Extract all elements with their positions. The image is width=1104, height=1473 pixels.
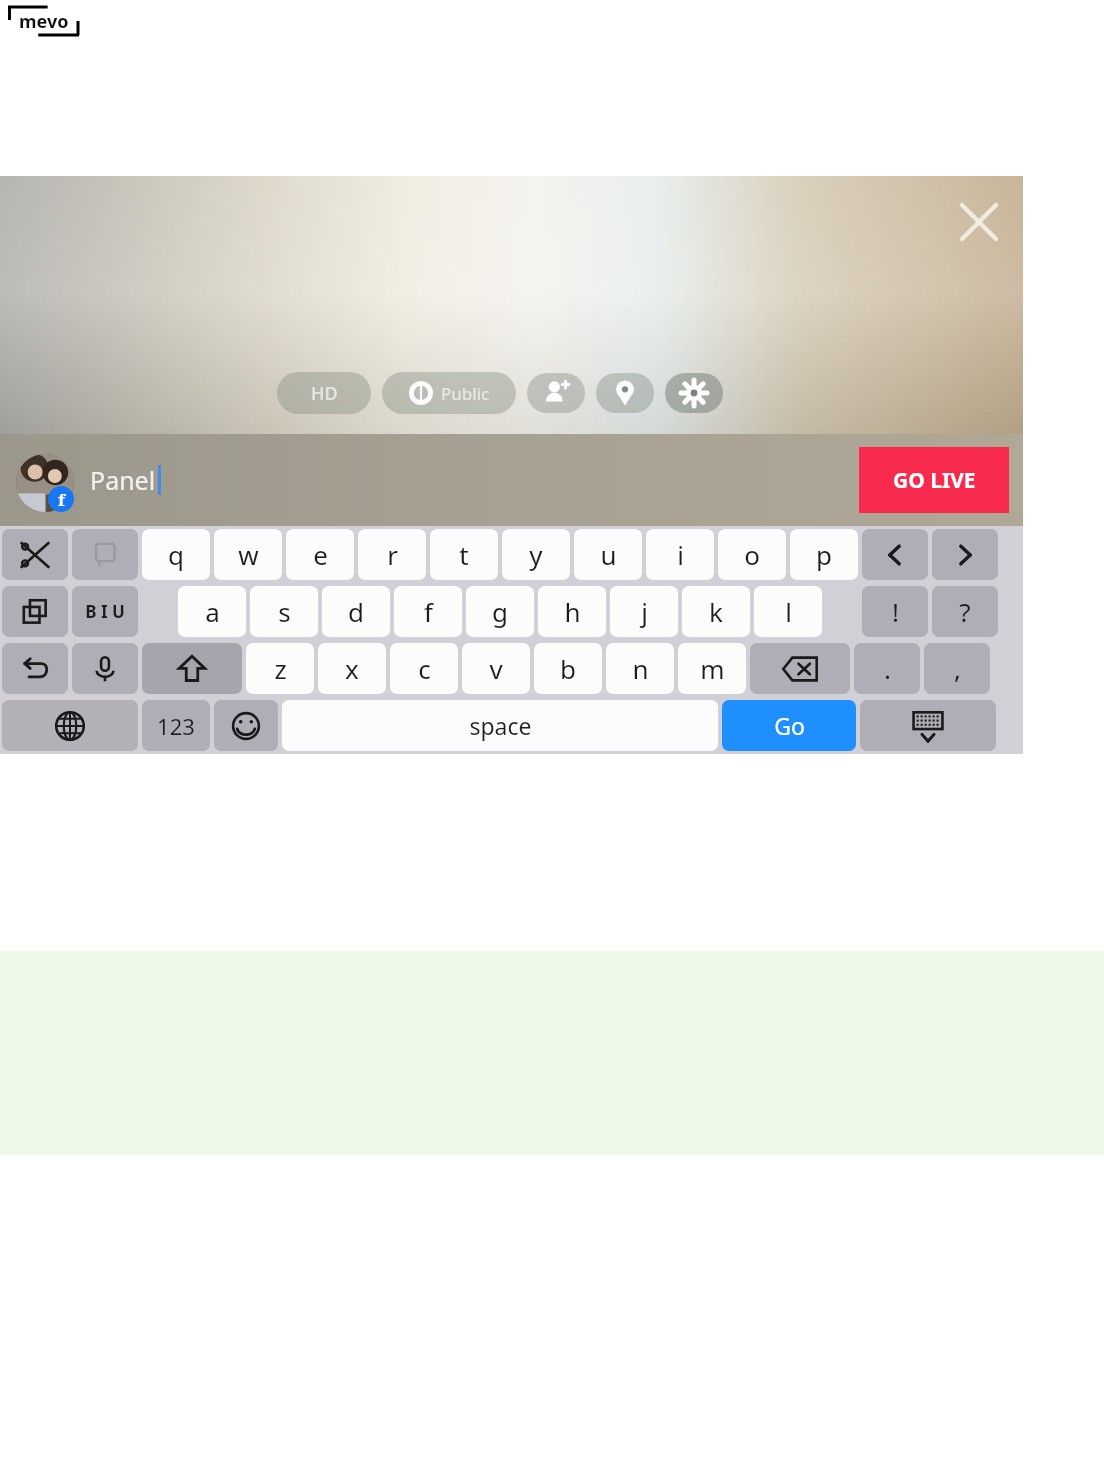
button[interactable]: m xyxy=(678,643,746,694)
staticText: , xyxy=(954,651,961,686)
staticText: v xyxy=(489,651,503,686)
button[interactable]: k xyxy=(682,586,750,637)
button[interactable]: i xyxy=(646,529,714,580)
staticText: . xyxy=(884,651,891,686)
staticText: p xyxy=(816,537,832,572)
button[interactable]: key xyxy=(2,529,68,580)
button[interactable]: e xyxy=(286,529,354,580)
staticText: f xyxy=(58,488,65,511)
button[interactable]: v xyxy=(462,643,530,694)
staticText: ? xyxy=(959,594,971,629)
button[interactable]: b xyxy=(534,643,602,694)
button[interactable]: key xyxy=(2,586,68,637)
button[interactable]: key xyxy=(72,643,138,694)
button[interactable]: u xyxy=(574,529,642,580)
staticText: GO LIVE xyxy=(893,466,976,495)
button[interactable]: d xyxy=(322,586,390,637)
staticText: e xyxy=(313,537,328,572)
staticText: r xyxy=(387,537,398,572)
staticText: c xyxy=(418,651,431,686)
staticText: g xyxy=(492,594,508,629)
button[interactable]: h xyxy=(538,586,606,637)
button[interactable]: ? xyxy=(932,586,998,637)
button[interactable]: ! xyxy=(862,586,928,637)
button[interactable]: g xyxy=(466,586,534,637)
staticText: m xyxy=(700,651,725,686)
staticText: j xyxy=(641,594,648,629)
staticText: ! xyxy=(892,594,899,629)
button[interactable]: j xyxy=(610,586,678,637)
staticText: q xyxy=(168,537,184,572)
button[interactable]: key xyxy=(862,529,928,580)
button[interactable]: l xyxy=(754,586,822,637)
button[interactable]: GO LIVE xyxy=(859,447,1009,513)
button[interactable]: z xyxy=(246,643,314,694)
staticText: b xyxy=(560,651,576,686)
button[interactable]: c xyxy=(390,643,458,694)
button[interactable]: y xyxy=(502,529,570,580)
button[interactable]: o xyxy=(718,529,786,580)
staticText: Go xyxy=(774,710,805,741)
button[interactable]: 123 xyxy=(142,700,210,751)
button[interactable]: key xyxy=(932,529,998,580)
button[interactable]: n xyxy=(606,643,674,694)
button[interactable]: Close xyxy=(951,194,1007,250)
staticText: Panel xyxy=(90,463,156,497)
button[interactable]: p xyxy=(790,529,858,580)
button[interactable]: key xyxy=(214,700,278,751)
staticText: k xyxy=(709,594,723,629)
button[interactable]: key xyxy=(750,643,850,694)
staticText: f xyxy=(424,594,433,629)
button[interactable]: key xyxy=(860,700,996,751)
button[interactable]: Invite people xyxy=(527,373,585,413)
button[interactable]: key xyxy=(142,643,242,694)
staticText: B I U xyxy=(85,600,125,623)
button[interactable]: q xyxy=(142,529,210,580)
button[interactable]: Settings xyxy=(665,373,723,413)
button[interactable]: , xyxy=(924,643,990,694)
staticText: u xyxy=(600,537,617,572)
staticText: d xyxy=(348,594,364,629)
button[interactable]: Profile xyxy=(16,454,74,512)
button[interactable]: w xyxy=(214,529,282,580)
button[interactable]: s xyxy=(250,586,318,637)
staticText: n xyxy=(632,651,649,686)
button[interactable]: a xyxy=(178,586,246,637)
button[interactable]: key xyxy=(72,529,138,580)
staticText: space xyxy=(469,710,532,741)
button[interactable]: HD xyxy=(277,372,371,414)
button[interactable]: r xyxy=(358,529,426,580)
staticText: i xyxy=(677,537,684,572)
button[interactable]: key xyxy=(2,700,138,751)
button[interactable]: key xyxy=(72,586,138,637)
button[interactable]: . xyxy=(854,643,920,694)
staticText: y xyxy=(529,537,543,572)
staticText: 123 xyxy=(157,711,195,741)
button[interactable]: Go xyxy=(722,700,856,751)
staticText: o xyxy=(744,537,760,572)
staticText: mevo xyxy=(19,9,69,34)
button[interactable]: Location xyxy=(596,373,654,413)
button[interactable]: x xyxy=(318,643,386,694)
button[interactable]: Panel xyxy=(90,434,859,526)
staticText: h xyxy=(564,594,581,629)
staticText: l xyxy=(785,594,792,629)
staticText: a xyxy=(205,594,220,629)
staticText: z xyxy=(274,651,287,686)
staticText: t xyxy=(459,537,469,572)
staticText: x xyxy=(345,651,359,686)
button[interactable]: key xyxy=(2,643,68,694)
staticText: w xyxy=(238,537,259,572)
staticText: HD xyxy=(311,381,338,406)
staticText: Public xyxy=(441,382,490,405)
button[interactable]: space xyxy=(282,700,718,751)
button[interactable]: f xyxy=(394,586,462,637)
button[interactable]: t xyxy=(430,529,498,580)
staticText: s xyxy=(278,594,291,629)
button[interactable]: Public xyxy=(382,372,516,414)
